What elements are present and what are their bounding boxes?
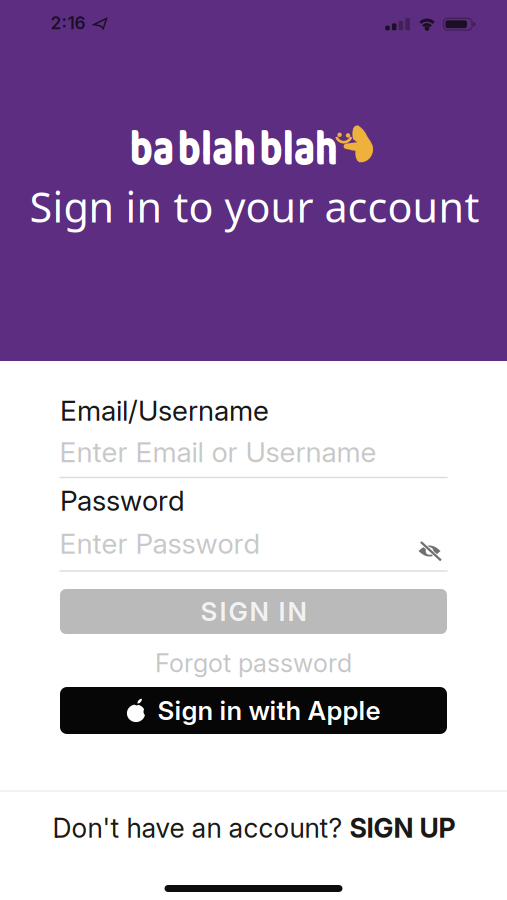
button[interactable]: Don't have an account? SIGN UP xyxy=(52,808,455,848)
staticText: Sign in to your account xyxy=(29,179,479,234)
staticText: Enter Email or Username xyxy=(59,435,376,469)
button[interactable]: Show password xyxy=(416,541,442,561)
staticText: Email/Username xyxy=(60,394,269,427)
staticText: 2:16 xyxy=(50,12,85,33)
staticText: Forgot password xyxy=(155,648,352,678)
button[interactable]: S I G N I N xyxy=(60,589,447,634)
staticText: Password xyxy=(60,484,185,517)
staticText: S I G N I N xyxy=(200,596,306,627)
button[interactable]: Sign in with Apple xyxy=(60,687,447,734)
staticText: Don't have an account? SIGN UP xyxy=(52,812,455,844)
button[interactable]: Email/Username xyxy=(59,431,447,479)
staticText: Enter Password xyxy=(59,527,260,560)
button[interactable]: Forgot password xyxy=(147,644,360,682)
staticText: ba blah blah xyxy=(95,108,372,191)
button[interactable]: Password xyxy=(59,520,447,572)
staticText: Sign in with Apple xyxy=(157,695,380,726)
